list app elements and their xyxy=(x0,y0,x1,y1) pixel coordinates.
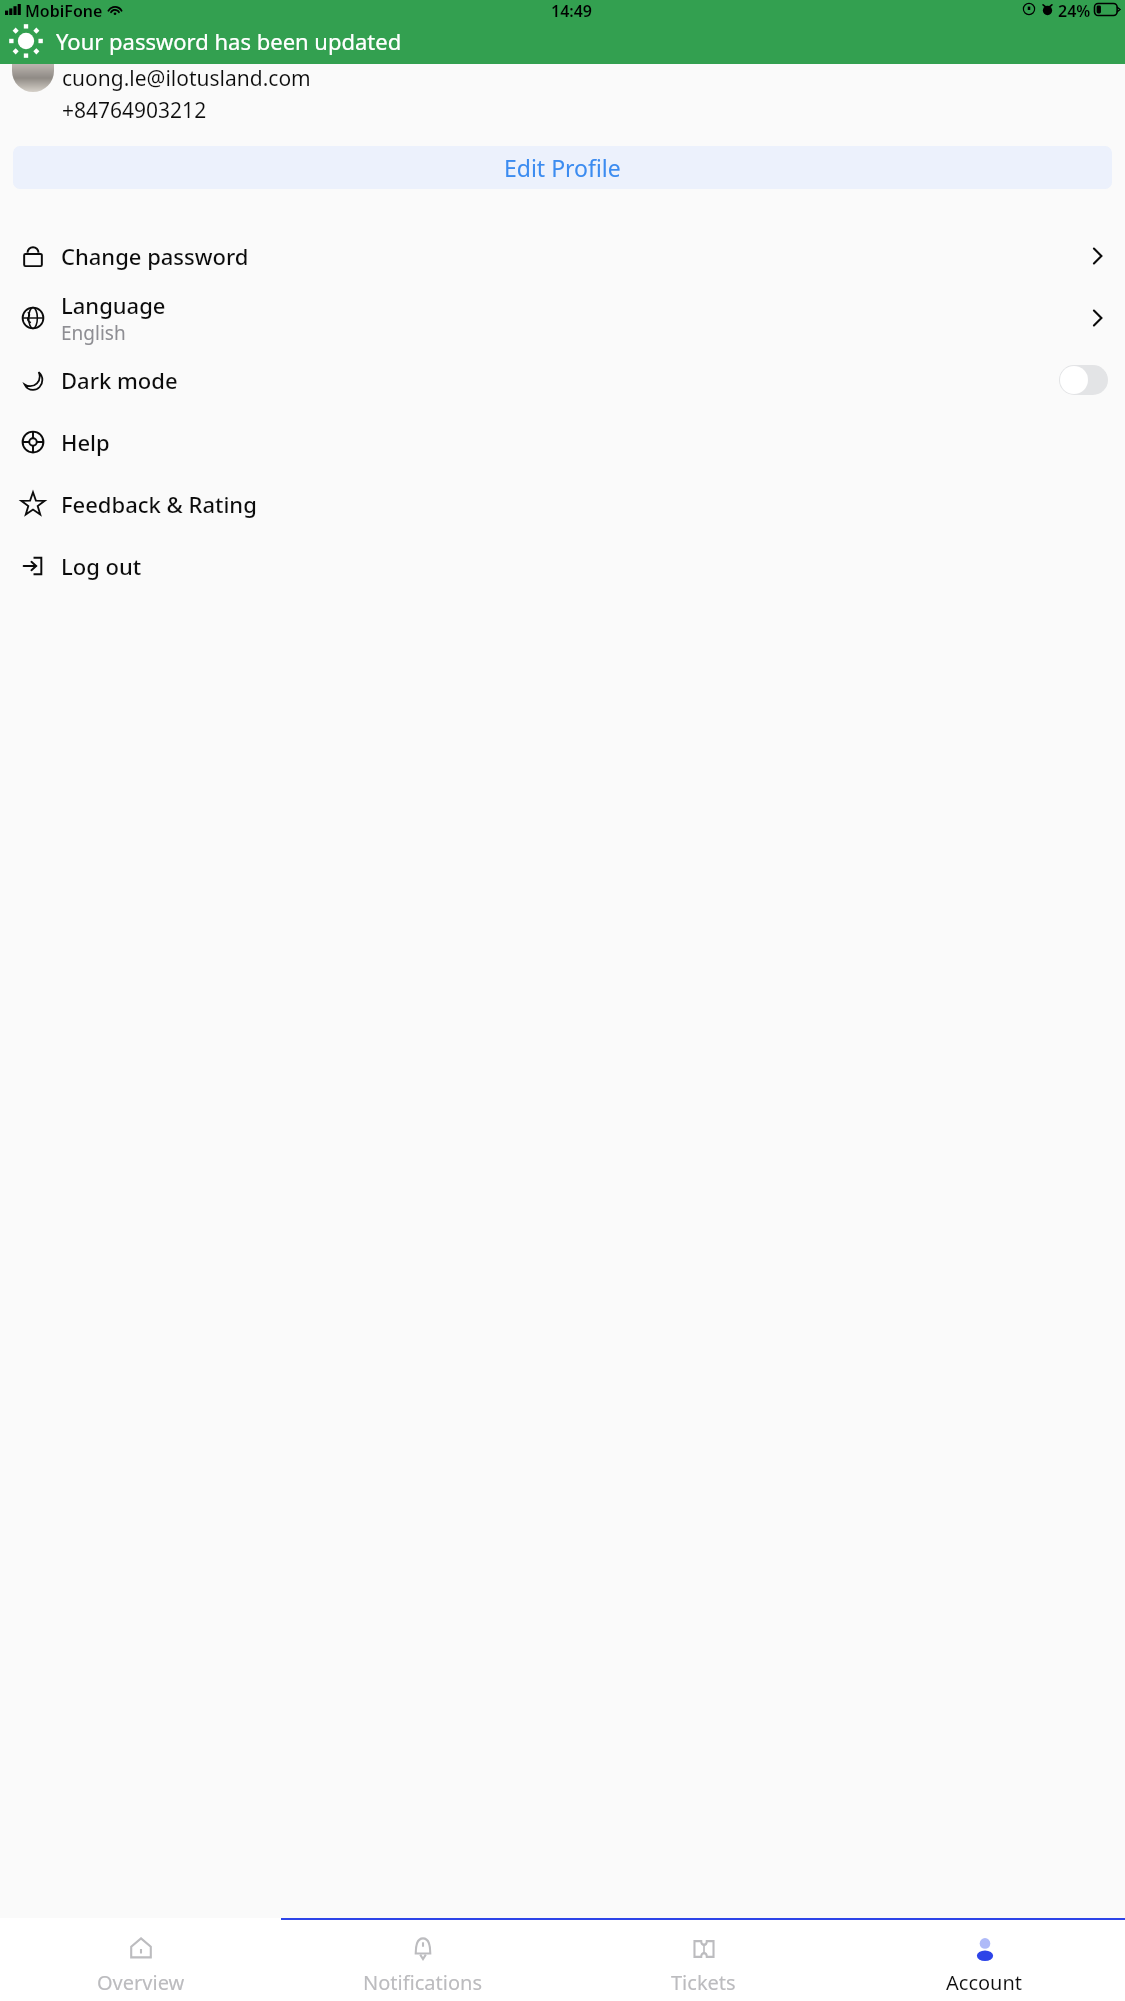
staticText: Language xyxy=(61,290,166,320)
staticText: 14:49 xyxy=(551,0,593,18)
button[interactable]: Help xyxy=(0,411,1125,473)
button[interactable]: Dark mode off xyxy=(1059,365,1108,395)
staticText: Overview xyxy=(97,1969,185,1996)
button[interactable]: Feedback & Rating xyxy=(0,473,1125,535)
staticText: Log out xyxy=(61,551,142,581)
staticText: Change password xyxy=(61,241,249,271)
staticText: MobiFone xyxy=(25,0,103,18)
button[interactable]: Edit Profile xyxy=(13,146,1112,189)
button[interactable]: Overview xyxy=(0,1928,282,2001)
button[interactable]: Notifications xyxy=(282,1928,563,2001)
staticText: English xyxy=(61,320,126,346)
staticText: Edit Profile xyxy=(504,152,621,183)
staticText: Dark mode xyxy=(61,365,178,395)
staticText: Feedback & Rating xyxy=(61,489,257,519)
button[interactable]: Change password xyxy=(0,225,1125,287)
button[interactable]: Tickets xyxy=(563,1928,844,2001)
staticText: cuong.le@ilotusland.com xyxy=(62,64,311,93)
button[interactable]: Log out xyxy=(0,535,1125,597)
staticText: Tickets xyxy=(671,1969,736,1996)
staticText: Account xyxy=(946,1969,1023,1996)
staticText: +84764903212 xyxy=(62,96,207,125)
button[interactable]: Dark mode xyxy=(0,349,1125,411)
staticText: Your password has been updated xyxy=(56,26,402,56)
button[interactable]: Language xyxy=(0,287,1125,349)
staticText: Help xyxy=(61,427,110,457)
staticText: 24% xyxy=(1058,0,1091,18)
button[interactable]: Account xyxy=(844,1928,1125,2001)
staticText: Notifications xyxy=(363,1969,482,1996)
